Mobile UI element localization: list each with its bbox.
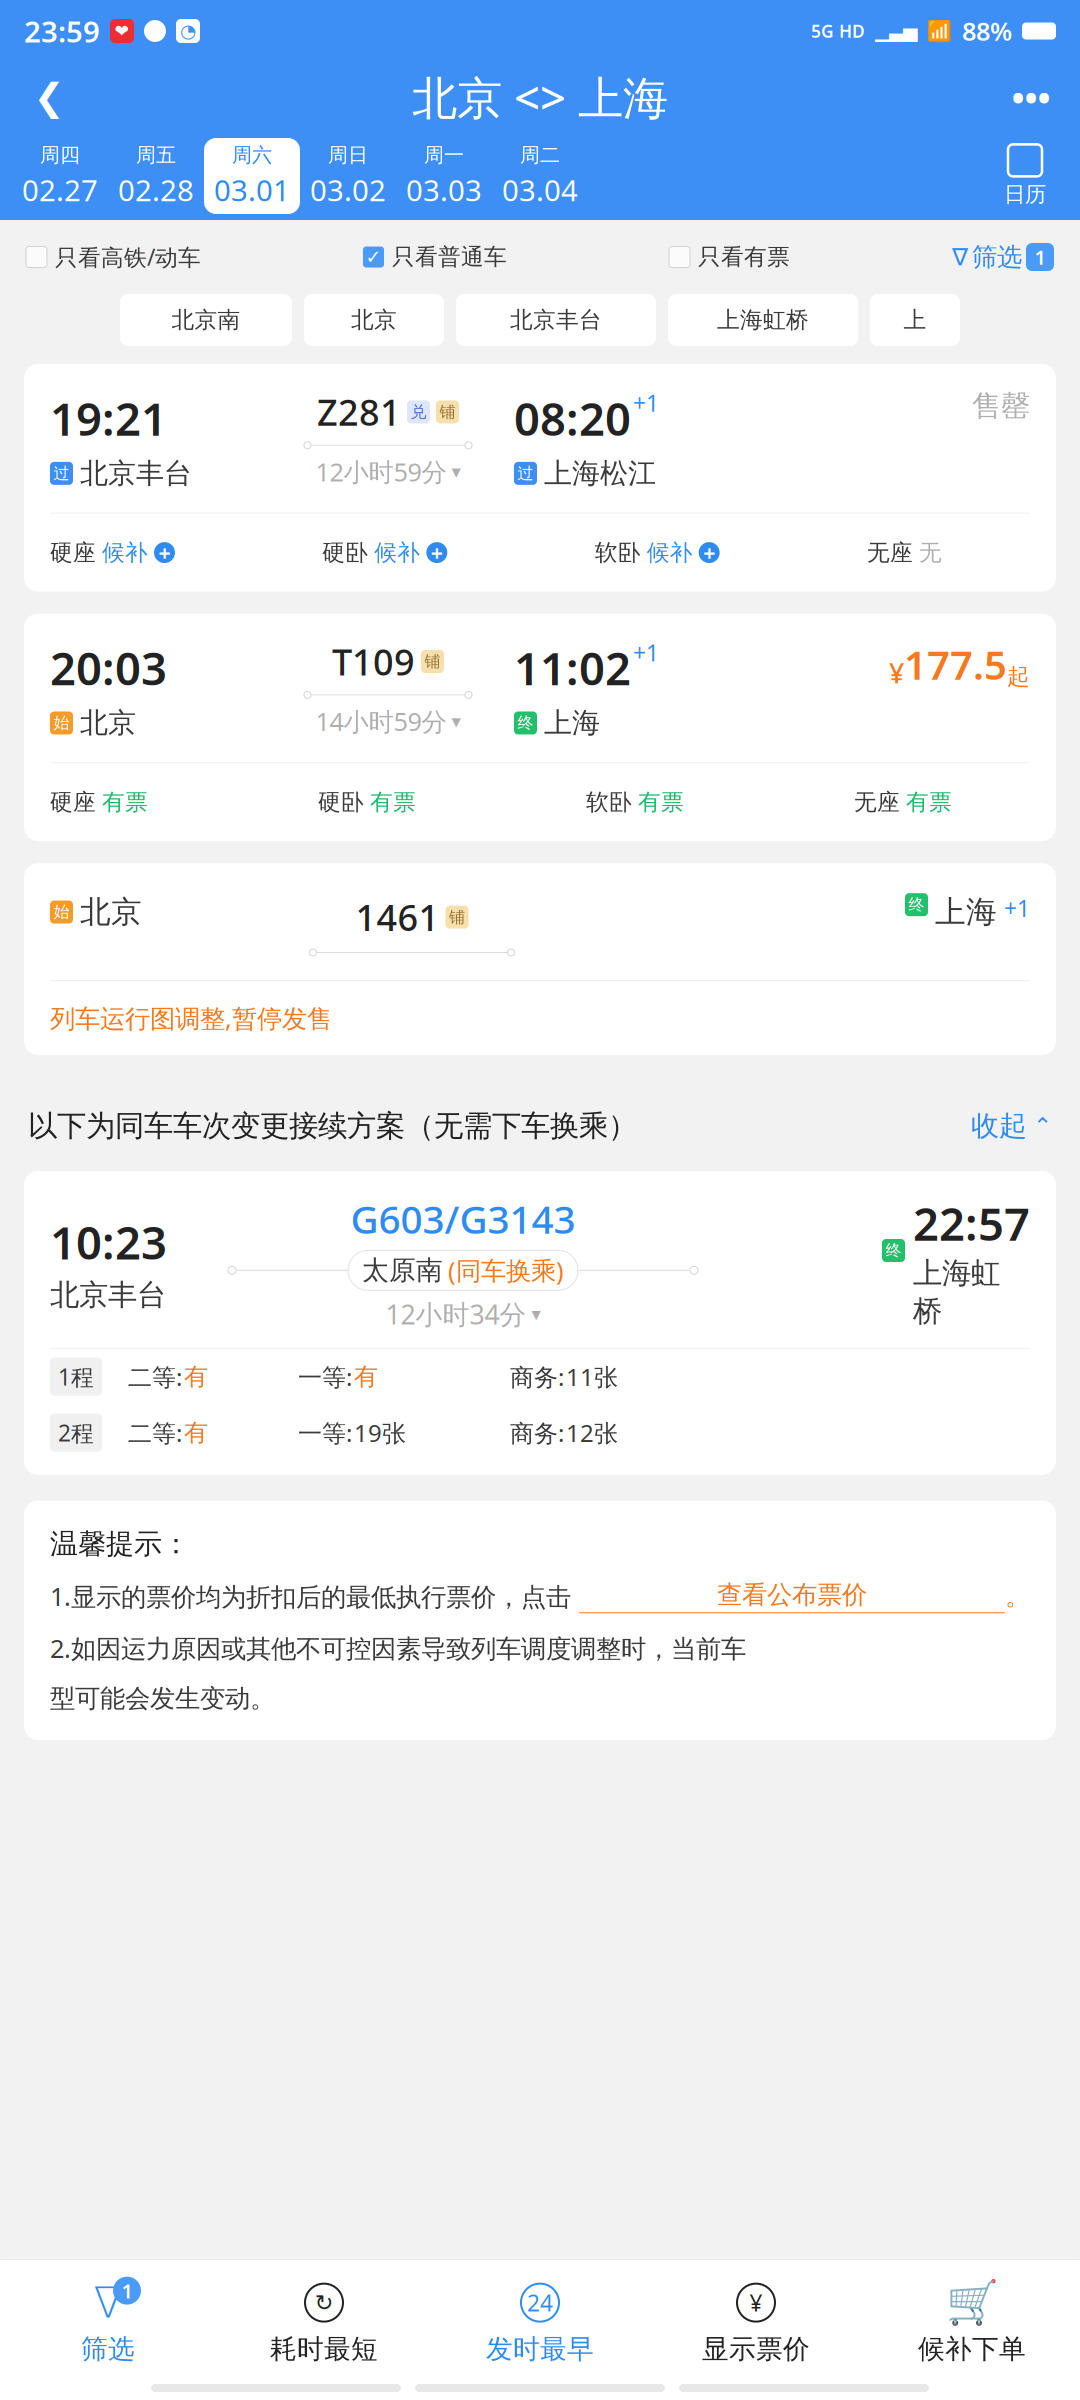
staticText: ¥ xyxy=(749,2288,762,2318)
button[interactable]: 收起 xyxy=(971,1109,1052,1143)
staticText: 北京丰台 xyxy=(80,456,192,491)
staticText: ∇ xyxy=(93,2278,122,2327)
staticText: 商务: xyxy=(510,1361,564,1393)
staticText: 上海虹 xyxy=(913,1255,1000,1291)
staticText: 03.03 xyxy=(406,170,482,209)
staticText: 12张 xyxy=(566,1417,618,1449)
staticText: ⌃ xyxy=(1033,1113,1052,1139)
staticText: 过 xyxy=(517,464,533,483)
staticText: 02.27 xyxy=(22,170,98,209)
button[interactable]: 10:23 xyxy=(24,1171,1056,1475)
button[interactable]: 返回 xyxy=(10,65,88,129)
button[interactable]: ↻ xyxy=(216,2271,432,2365)
staticText: 终 xyxy=(517,713,533,733)
staticText: 收起 xyxy=(971,1109,1027,1143)
button[interactable]: 周日 xyxy=(300,138,396,214)
staticText: 上海 xyxy=(544,706,600,740)
button[interactable]: 19:21 xyxy=(24,364,1056,592)
button[interactable]: 上 xyxy=(870,294,960,346)
staticText: 日历 xyxy=(1004,181,1046,208)
staticText: 19:21 xyxy=(50,388,167,448)
staticText: 上海松江 xyxy=(544,456,656,491)
button[interactable]: 上海虹桥 xyxy=(668,294,858,346)
button[interactable]: 只看高铁/动车 xyxy=(26,242,201,272)
staticText: 以下为同车车次变更接续方案（无需下车换乘） xyxy=(28,1108,637,1144)
staticText: 硬座 xyxy=(50,539,96,566)
button[interactable]: 查看公布票价 xyxy=(579,1579,1005,1613)
staticText: 14小时59分 xyxy=(315,704,446,738)
staticText: 12小时59分 xyxy=(315,455,446,488)
staticText: 显示票价 xyxy=(702,2333,810,2365)
staticText: + xyxy=(431,538,443,567)
staticText: 终 xyxy=(885,1241,901,1260)
button[interactable]: ✓ xyxy=(363,243,507,271)
staticText: 商务: xyxy=(510,1417,564,1449)
staticText: 铺 xyxy=(449,907,465,927)
staticText: 候补 xyxy=(102,539,148,566)
staticText: 上海 xyxy=(935,893,997,931)
staticText: ❮ xyxy=(33,76,64,118)
staticText: 只看有票 xyxy=(698,243,790,271)
staticText: ❤ xyxy=(114,21,129,41)
staticText: + xyxy=(158,538,170,567)
staticText: 售罄 xyxy=(972,388,1030,424)
button[interactable]: 24 xyxy=(432,2271,648,2365)
button[interactable]: ¥ xyxy=(648,2271,864,2365)
staticText: 02.28 xyxy=(118,170,194,209)
button[interactable]: 周二 xyxy=(492,138,588,214)
staticText: 23:59 xyxy=(24,11,100,50)
staticText: 03.01 xyxy=(214,170,290,209)
staticText: 11张 xyxy=(566,1361,618,1393)
staticText: 筛选 xyxy=(972,241,1022,272)
staticText: 硬卧 xyxy=(318,788,364,816)
staticText: 10:23 xyxy=(50,1212,167,1272)
staticText: 周日 xyxy=(328,143,368,167)
button[interactable]: 北京南 xyxy=(120,294,292,346)
button[interactable]: 🛒 xyxy=(864,2271,1080,2365)
staticText: 硬卧 xyxy=(322,539,368,566)
staticText: 发时最早 xyxy=(486,2333,594,2365)
staticText: 周二 xyxy=(520,143,560,167)
button[interactable]: 周四 xyxy=(12,138,108,214)
staticText: 只看普通车 xyxy=(392,243,507,271)
staticText: 只看高铁/动车 xyxy=(55,242,201,272)
button[interactable]: 始 xyxy=(24,863,1056,1055)
staticText: 北京丰台 xyxy=(510,306,602,334)
button[interactable]: 更多 xyxy=(992,65,1070,129)
staticText: 🛒 xyxy=(945,2278,998,2327)
button[interactable]: 只看有票 xyxy=(669,243,790,271)
staticText: ▾ xyxy=(451,461,460,482)
staticText: 北京丰台 xyxy=(50,1277,166,1313)
button[interactable]: 北京丰台 xyxy=(456,294,656,346)
staticText: 22:57 xyxy=(913,1193,1030,1253)
staticText: 03.02 xyxy=(310,170,386,209)
staticText: + xyxy=(703,538,715,567)
staticText: 有票 xyxy=(638,788,684,816)
staticText: (同车换乘) xyxy=(448,1253,564,1287)
button[interactable]: 周五 xyxy=(108,138,204,214)
button[interactable]: 北京 xyxy=(304,294,444,346)
button[interactable]: 日历 xyxy=(982,138,1068,214)
staticText: 周五 xyxy=(136,143,176,167)
staticText: 铺 xyxy=(439,402,455,422)
staticText: 耗时最短 xyxy=(270,2333,378,2365)
button[interactable]: ∇ xyxy=(0,2271,216,2365)
button[interactable]: 20:03 xyxy=(24,614,1056,841)
button[interactable]: 周一 xyxy=(396,138,492,214)
staticText: Z281 xyxy=(317,388,401,436)
staticText: 有 xyxy=(354,1362,378,1391)
staticText: 北京 xyxy=(351,306,397,334)
staticText: 03.04 xyxy=(502,170,578,209)
staticText: 兑 xyxy=(410,402,426,422)
staticText: 有 xyxy=(184,1362,208,1391)
button[interactable]: ∇ xyxy=(952,241,1054,272)
button[interactable]: 周六 xyxy=(204,138,300,214)
staticText: 11:02 xyxy=(514,638,631,698)
staticText: 起 xyxy=(1007,663,1030,691)
staticText: ••• xyxy=(1011,74,1050,120)
staticText: 始 xyxy=(53,902,69,922)
staticText: 周六 xyxy=(232,143,272,167)
staticText: 软卧 xyxy=(586,788,632,816)
staticText: 一等: xyxy=(298,1417,352,1449)
staticText: 177.5 xyxy=(904,638,1007,691)
